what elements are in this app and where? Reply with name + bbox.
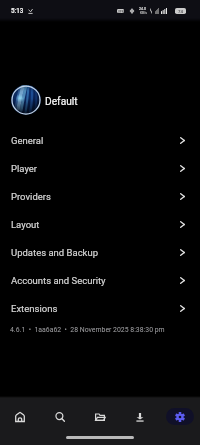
button[interactable]: Extensions bbox=[0, 294, 200, 322]
staticText: Extensions bbox=[11, 303, 58, 314]
button[interactable]: Layout bbox=[0, 210, 200, 238]
button[interactable]: Library bbox=[80, 396, 120, 437]
staticText: Player bbox=[11, 163, 38, 174]
staticText: Updates and Backup bbox=[11, 247, 98, 258]
staticText: Layout bbox=[11, 219, 40, 230]
staticText: 74 bbox=[178, 9, 183, 14]
button[interactable]: Player bbox=[0, 154, 200, 182]
button[interactable]: Providers bbox=[0, 182, 200, 210]
staticText: 5:13 bbox=[11, 7, 24, 14]
staticText: 24.0 bbox=[139, 7, 147, 11]
button[interactable]: General bbox=[0, 126, 200, 154]
staticText: Accounts and Security bbox=[11, 275, 106, 286]
staticText: VPN bbox=[118, 10, 124, 13]
button[interactable]: Default bbox=[0, 85, 200, 115]
button[interactable]: Search bbox=[40, 396, 80, 437]
staticText: Providers bbox=[11, 191, 51, 202]
button[interactable]: Accounts and Security bbox=[0, 266, 200, 294]
staticText: Default bbox=[45, 96, 78, 108]
staticText: 4.6.1 • 1aa6a62 • 28 November 2025 8:38:… bbox=[10, 326, 165, 334]
button[interactable]: Downloads bbox=[120, 396, 160, 437]
staticText: General bbox=[11, 135, 44, 146]
button[interactable]: Settings bbox=[160, 396, 200, 437]
button[interactable]: Updates and Backup bbox=[0, 238, 200, 266]
button[interactable]: Home bbox=[0, 396, 40, 437]
staticText: KB/s bbox=[140, 11, 147, 15]
